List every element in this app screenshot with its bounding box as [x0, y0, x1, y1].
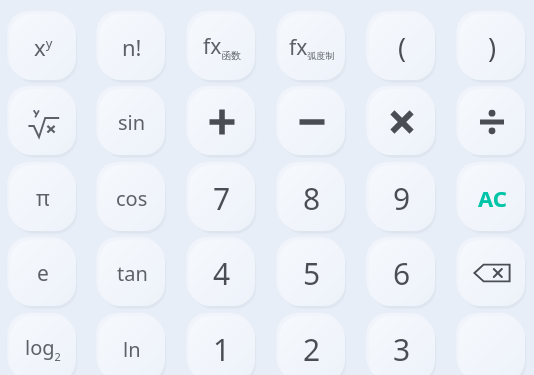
button[interactable]: AC [459, 165, 525, 231]
staticText: 7 [213, 178, 231, 219]
staticText: 2 [303, 329, 321, 370]
button[interactable]: 4 [189, 240, 255, 306]
staticText: 5 [303, 253, 321, 294]
staticText: log2 [25, 334, 61, 364]
button[interactable]: xy [10, 14, 76, 80]
button[interactable]: 7 [189, 165, 255, 231]
button[interactable]: 9 [369, 165, 435, 231]
button[interactable]: fx函数 [189, 14, 255, 80]
staticText: 3 [393, 329, 411, 370]
button[interactable]: sin [99, 89, 165, 155]
staticText: 8 [303, 178, 321, 219]
staticText: e [37, 259, 49, 288]
button[interactable]: cos [99, 165, 165, 231]
staticText: ) [488, 29, 497, 66]
button[interactable]: ( [369, 14, 435, 80]
button[interactable]: 1 [189, 316, 255, 375]
button[interactable]: Plus [189, 89, 255, 155]
button[interactable]: ln [99, 316, 165, 375]
button[interactable]: e [10, 240, 76, 306]
button[interactable]: π [10, 165, 76, 231]
staticText: sin [118, 109, 146, 136]
button[interactable]: log2 [10, 316, 76, 375]
button[interactable]: 5 [279, 240, 345, 306]
staticText: cos [116, 185, 148, 212]
button[interactable]: 3 [369, 316, 435, 375]
staticText: AC [478, 183, 507, 213]
button[interactable]: fx弧度制 [279, 14, 345, 80]
staticText: 1 [213, 329, 231, 370]
staticText: ( [398, 29, 407, 66]
button[interactable]: 8 [279, 165, 345, 231]
staticText: fx弧度制 [289, 33, 335, 62]
staticText: xy [34, 32, 53, 62]
staticText: fx函数 [203, 32, 242, 62]
button[interactable]: 2 [279, 316, 345, 375]
button[interactable]: Minus [279, 89, 345, 155]
button[interactable]: tan [99, 240, 165, 306]
staticText: tan [117, 260, 148, 287]
button[interactable]: Multiply [369, 89, 435, 155]
staticText: π [36, 184, 50, 213]
button[interactable]: Divide [459, 89, 525, 155]
button[interactable] [10, 89, 76, 155]
staticText: 9 [393, 178, 411, 219]
staticText: ln [123, 336, 141, 363]
button[interactable]: n! [99, 14, 165, 80]
button[interactable]: Backspace [459, 240, 525, 306]
staticText: 6 [393, 253, 411, 294]
button[interactable]: 6 [369, 240, 435, 306]
staticText: n! [122, 32, 142, 62]
staticText: 4 [213, 253, 231, 294]
button[interactable]: ) [459, 14, 525, 80]
